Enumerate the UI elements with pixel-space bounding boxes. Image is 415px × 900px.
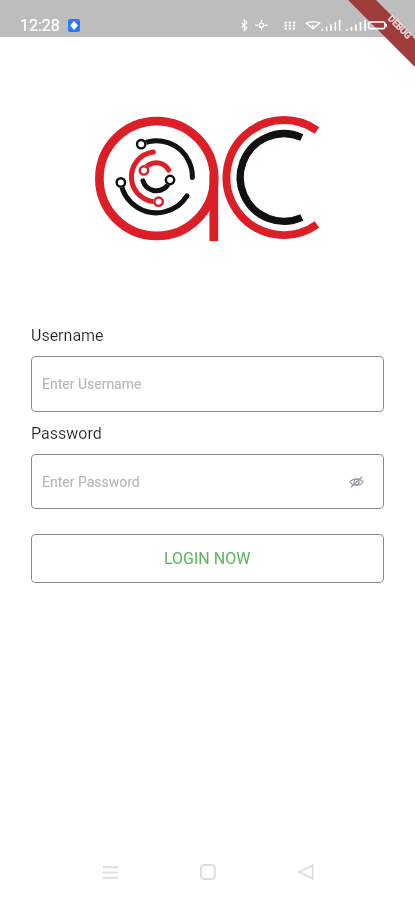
staticText: 12:28	[20, 16, 60, 35]
button[interactable]: Recents	[83, 845, 137, 899]
button[interactable]: Show password	[345, 471, 367, 493]
button[interactable]: Enter Username	[31, 356, 384, 412]
button[interactable]: Home	[181, 845, 235, 899]
button[interactable]: Back	[279, 845, 333, 899]
staticText: Password	[31, 424, 102, 443]
staticText: LOGIN NOW	[164, 549, 251, 568]
staticText: DEBUG	[385, 13, 414, 42]
staticText: Username	[31, 326, 104, 345]
button[interactable]: LOGIN NOW	[31, 534, 384, 583]
button[interactable]: Enter Password	[31, 454, 384, 509]
staticText: Enter Username	[42, 376, 142, 392]
staticText: Enter Password	[42, 474, 140, 490]
